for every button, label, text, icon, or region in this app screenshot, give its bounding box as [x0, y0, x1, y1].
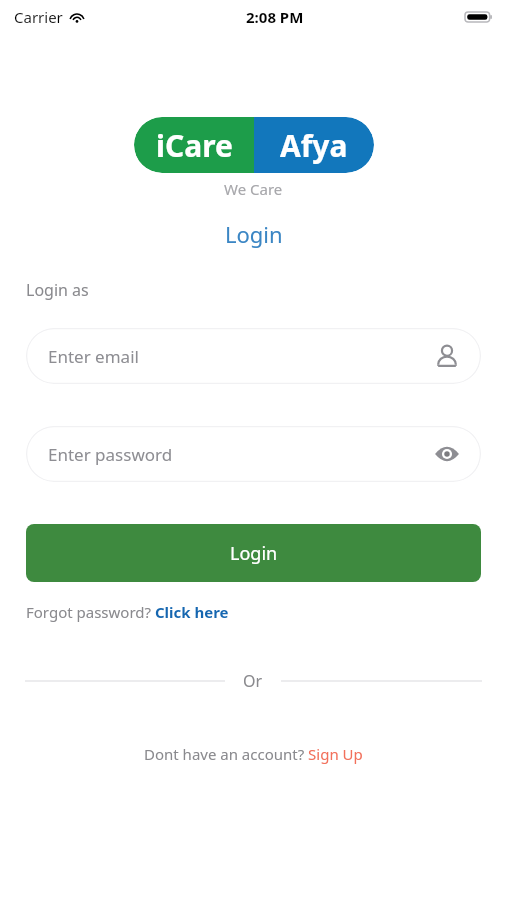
staticText: 2:08 PM: [246, 7, 304, 27]
staticText: Carrier: [14, 7, 63, 27]
staticText: Enter email: [48, 345, 427, 368]
button[interactable]: Forgot password? Click here: [26, 602, 229, 622]
button[interactable]: Select user: [427, 336, 467, 376]
button[interactable]: Dont have an account? Sign Up: [144, 744, 363, 764]
button[interactable]: iCare: [134, 117, 374, 173]
staticText: Login: [230, 541, 278, 566]
staticText: Login as: [26, 279, 89, 301]
staticText: Or: [243, 670, 263, 692]
staticText: Dont have an account? Sign Up: [144, 744, 363, 764]
staticText: Enter password: [48, 443, 427, 466]
staticText: Login: [225, 219, 283, 249]
button[interactable]: Enter password: [26, 426, 481, 482]
staticText: Afya: [280, 125, 348, 166]
button[interactable]: Login: [26, 524, 481, 582]
staticText: iCare: [156, 125, 233, 166]
staticText: Forgot password? Click here: [26, 602, 229, 622]
button[interactable]: Show password: [427, 434, 467, 474]
staticText: We Care: [224, 179, 283, 199]
button[interactable]: Enter email: [26, 328, 481, 384]
